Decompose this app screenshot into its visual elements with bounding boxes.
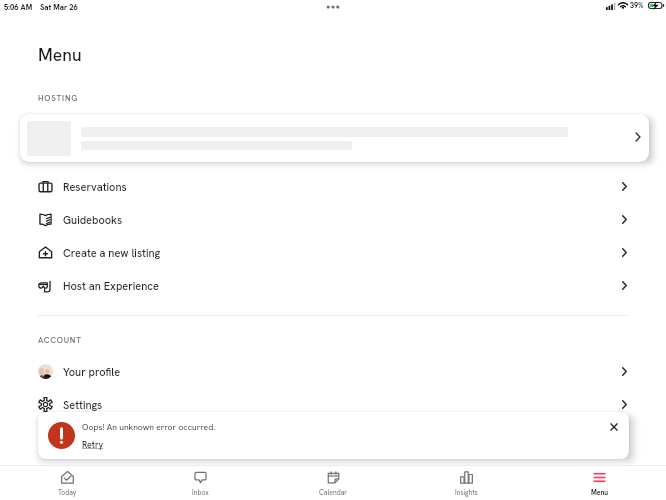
button[interactable]: Calendar <box>267 466 400 500</box>
staticText: Your profile <box>63 365 121 379</box>
staticText: Insights <box>455 488 478 497</box>
staticText: Settings <box>63 398 103 412</box>
staticText: Guidebooks <box>63 213 123 227</box>
staticText: Menu <box>591 488 609 497</box>
button[interactable]: Today <box>0 466 134 500</box>
button[interactable]: Dismiss <box>606 419 622 435</box>
staticText: Host an Experience <box>63 279 159 293</box>
button[interactable]: Retry <box>82 439 104 450</box>
button[interactable]: Settings <box>0 388 666 421</box>
button[interactable]: Inbox <box>134 466 267 500</box>
staticText: HOSTING <box>38 93 78 104</box>
button[interactable]: Insights <box>400 466 533 500</box>
staticText: Create a new listing <box>63 246 161 260</box>
staticText: Menu <box>38 43 82 66</box>
button[interactable]: Your profile <box>0 355 666 388</box>
staticText: Calendar <box>319 488 348 497</box>
button[interactable]: Reservations <box>0 170 666 203</box>
staticText: 39% <box>630 1 644 10</box>
staticText: Inbox <box>192 488 209 497</box>
staticText: Reservations <box>63 180 127 194</box>
button[interactable] <box>20 114 649 162</box>
staticText: ACCOUNT <box>38 335 82 346</box>
staticText: Sat Mar 26 <box>40 2 78 12</box>
staticText: Oops! An unknown error occurred. <box>82 421 216 432</box>
staticText: Today <box>58 488 77 497</box>
button[interactable]: Create a new listing <box>0 236 666 269</box>
staticText: 5:06 AM <box>4 2 33 12</box>
button[interactable]: Host an Experience <box>0 269 666 302</box>
button[interactable]: Guidebooks <box>0 203 666 236</box>
button[interactable]: Menu <box>533 466 666 500</box>
